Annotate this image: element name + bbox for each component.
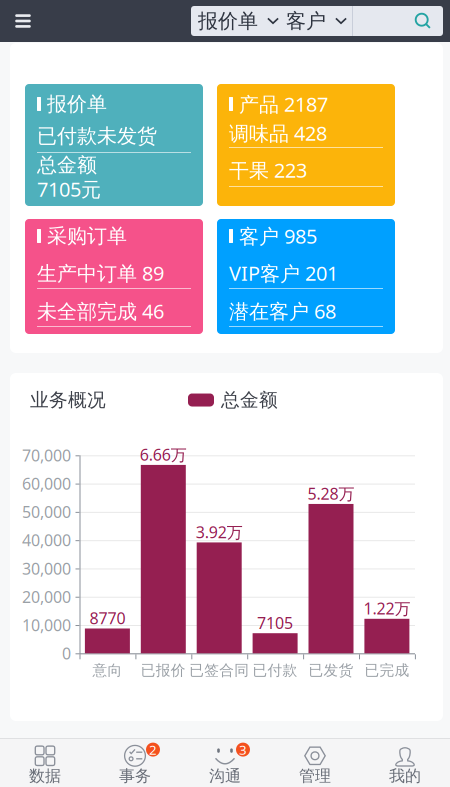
button[interactable]: 报价单	[191, 6, 286, 36]
button[interactable]: 3	[180, 739, 270, 787]
staticText: 总金额	[37, 153, 97, 177]
staticText: 10,000	[22, 614, 71, 636]
button[interactable]: Menu	[0, 0, 46, 41]
staticText: 客户	[286, 9, 326, 33]
staticText: 采购订单	[41, 224, 127, 248]
staticText: 30,000	[22, 558, 71, 579]
staticText: 7105元	[37, 176, 101, 202]
staticText: 总金额	[221, 388, 278, 411]
staticText: 50,000	[22, 501, 71, 522]
staticText: 已完成	[364, 661, 409, 679]
staticText: 60,000	[22, 473, 71, 494]
staticText: 6.66万	[140, 444, 187, 465]
staticText: 5.28万	[307, 483, 354, 504]
button[interactable]: 数据	[0, 739, 90, 787]
staticText: 3.92万	[196, 521, 243, 542]
staticText: 0	[62, 643, 71, 664]
staticText: 未全部完成 46	[37, 298, 164, 324]
staticText: VIP客户 201	[229, 260, 338, 286]
staticText: 70,000	[22, 445, 71, 466]
staticText: 报价单	[41, 92, 107, 116]
staticText: 3	[239, 741, 247, 758]
button[interactable]: 采购订单	[25, 219, 203, 334]
button[interactable]: 产品 2187	[217, 84, 395, 206]
staticText: 我的	[389, 766, 421, 786]
staticText: 干果 223	[229, 157, 307, 183]
staticText: 潜在客户 68	[229, 298, 336, 324]
staticText: 20,000	[22, 586, 71, 607]
staticText: 已报价	[141, 661, 186, 679]
button[interactable]: Search	[403, 6, 443, 36]
staticText: 1.22万	[363, 598, 410, 619]
staticText: 意向	[92, 661, 122, 679]
staticText: 已付款未发货	[37, 124, 157, 148]
staticText: 2	[149, 741, 157, 758]
staticText: 8770	[89, 607, 125, 629]
button[interactable]: 客户 985	[217, 219, 395, 334]
staticText: 事务	[119, 766, 151, 786]
staticText: 调味品 428	[229, 120, 327, 146]
staticText: 生产中订单 89	[37, 260, 164, 286]
button[interactable]: 报价单	[25, 84, 203, 206]
button[interactable]: 2	[90, 739, 180, 787]
button[interactable]: 我的	[360, 739, 450, 787]
staticText: 沟通	[209, 766, 241, 786]
staticText: 40,000	[22, 529, 71, 551]
staticText: 已发货	[308, 661, 353, 679]
staticText: 客户 985	[233, 223, 317, 249]
staticText: 7105	[257, 612, 293, 633]
button[interactable]: 客户	[286, 6, 352, 36]
staticText: 已签合同	[189, 661, 249, 679]
staticText: 产品 2187	[233, 91, 328, 117]
staticText: 业务概况	[30, 388, 106, 411]
button[interactable]: 管理	[270, 739, 360, 787]
staticText: 报价单	[198, 9, 258, 33]
staticText: 管理	[299, 766, 331, 786]
staticText: 已付款	[253, 661, 298, 679]
staticText: 数据	[29, 766, 61, 786]
